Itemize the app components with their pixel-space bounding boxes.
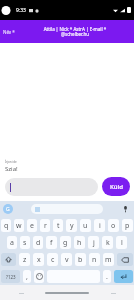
button[interactable]: j [88,236,99,249]
button[interactable]: Enter [114,270,133,283]
staticText: . [106,272,108,282]
staticText: h [77,238,82,248]
button[interactable] [5,178,98,196]
staticText: f [50,238,53,248]
button[interactable]: Küld [102,177,130,196]
staticText: n [92,255,97,265]
button[interactable]: m [103,253,114,266]
staticText: i [99,221,101,231]
button[interactable]: ?123 [1,270,20,283]
button[interactable]: k [102,236,113,249]
staticText: , [26,272,28,282]
staticText: Név * [3,29,15,35]
button[interactable]: x [33,253,44,266]
staticText: b [78,255,83,265]
staticText: z [23,255,27,265]
button[interactable]: u [80,219,91,232]
button[interactable] [31,204,103,214]
button[interactable]: n [89,253,100,266]
staticText: l [121,238,123,248]
staticText: Attila | Nick * AstrA | E-mail * @schelb… [21,26,129,38]
button[interactable]: r [40,219,50,232]
button[interactable]: b [75,253,86,266]
button[interactable]: Backspace [117,253,133,266]
button[interactable]: t [53,219,63,232]
staticText: v [65,255,69,265]
button[interactable]: Google Assistant [3,204,13,214]
staticText: ?123 [6,274,16,280]
button[interactable]: Switch keyboard [110,290,116,296]
button[interactable]: z [19,253,30,266]
button[interactable]: i [94,219,105,232]
staticText: Írjon ide [5,160,17,164]
staticText: a [10,238,14,248]
button[interactable]: f [46,236,57,249]
button[interactable]: s [20,236,30,249]
button[interactable]: Emoji [34,270,44,283]
staticText: k [106,238,110,248]
button[interactable]: o [108,219,119,232]
staticText: t [57,221,60,231]
staticText: p [125,221,130,231]
button[interactable]: h [74,236,85,249]
button[interactable]: g [60,236,71,249]
staticText: Küld [110,183,123,191]
button[interactable]: Shift [1,253,16,266]
button[interactable]: l [116,236,127,249]
staticText: 9:33 [16,7,26,14]
button[interactable]: c [47,253,58,266]
button[interactable]: Voice input [120,204,130,214]
staticText: x [37,255,41,265]
button[interactable]: e [27,219,37,232]
staticText: e [30,221,34,231]
button[interactable]: p [122,219,133,232]
staticText: d [36,238,41,248]
button[interactable]: w [14,219,24,232]
button[interactable]: , [23,270,31,283]
staticText: r [44,221,47,231]
staticText: q [4,221,9,231]
button[interactable]: y [66,219,77,232]
button[interactable]: Home [45,292,89,294]
staticText: m [105,255,112,265]
staticText: s [23,238,27,248]
staticText: o [111,221,116,231]
staticText: w [16,221,22,231]
button[interactable]: a [7,236,17,249]
button[interactable]: Back [18,290,24,296]
button[interactable]: d [33,236,43,249]
staticText: Szia! [5,165,18,173]
staticText: c [51,255,55,265]
staticText: g [63,238,68,248]
button[interactable]: q [1,219,11,232]
staticText: u [83,221,88,231]
staticText: G [6,206,10,213]
button[interactable]: v [61,253,72,266]
button[interactable]: . [103,270,111,283]
staticText: y [70,221,74,231]
staticText: j [93,238,95,248]
